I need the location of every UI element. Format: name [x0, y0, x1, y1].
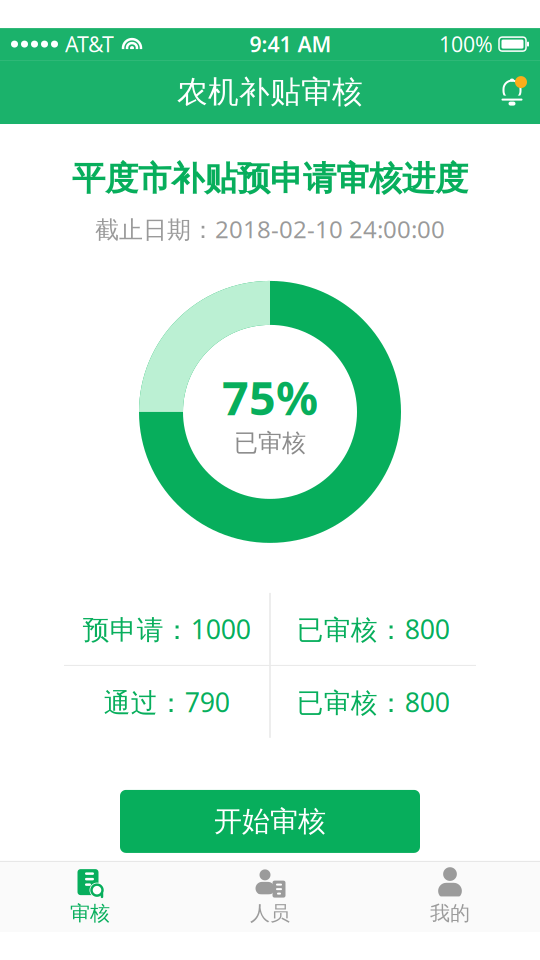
staticText: 审核	[70, 901, 110, 926]
staticText: 已审核：800	[297, 684, 450, 720]
staticText: 已审核	[234, 428, 306, 458]
staticText: 人员	[250, 901, 290, 926]
staticText: 预申请：1000	[83, 611, 251, 647]
button[interactable]: 通知	[484, 64, 540, 120]
staticText: 农机补贴审核	[177, 73, 363, 111]
staticText: 100%	[439, 30, 493, 58]
button[interactable]: 开始审核	[120, 790, 420, 853]
staticText: 75%	[222, 366, 318, 428]
button[interactable]: 我的	[360, 862, 540, 932]
staticText: 平度市补贴预申请审核进度	[72, 158, 468, 199]
staticText: 开始审核	[214, 804, 326, 839]
button[interactable]: 人员	[180, 862, 360, 932]
staticText: 截止日期：2018-02-10 24:00:00	[95, 213, 445, 245]
staticText: 9:41 AM	[249, 30, 331, 58]
staticText: 通过：790	[104, 684, 230, 720]
button[interactable]: 审核	[0, 862, 180, 932]
staticText: 我的	[430, 901, 470, 926]
staticText: AT&T	[65, 30, 114, 58]
staticText: 已审核：800	[297, 611, 450, 647]
